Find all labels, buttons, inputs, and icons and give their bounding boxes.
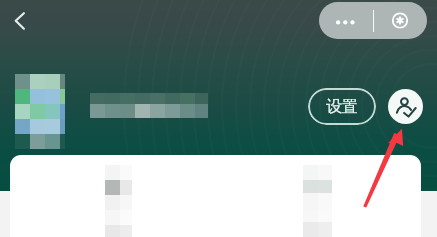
button[interactable]: Close — [373, 2, 427, 39]
staticText: 设置 — [326, 97, 358, 117]
button[interactable]: 设置 — [308, 88, 376, 125]
button[interactable]: Following — [388, 89, 423, 124]
button[interactable]: Back — [6, 6, 36, 36]
button[interactable]: More — [319, 2, 373, 39]
